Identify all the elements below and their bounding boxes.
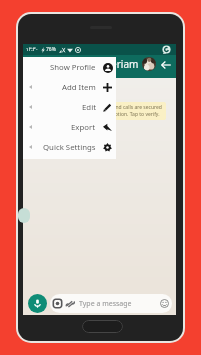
staticText: Add Item	[62, 82, 96, 93]
staticText: Edit	[82, 102, 96, 113]
button[interactable]: Add Item	[23, 77, 116, 97]
button[interactable]: Quick Settings	[23, 137, 116, 157]
staticText: Messages and calls are secured with encr…	[88, 104, 162, 118]
button[interactable]: Messages and calls are secured with encr…	[84, 102, 166, 120]
button[interactable]: Contact photo	[142, 57, 156, 71]
button[interactable]: Record voice message	[28, 294, 47, 313]
staticText: Meriam	[102, 57, 139, 71]
staticText: ١٢:٣٠	[26, 46, 39, 53]
button[interactable]: Edit	[23, 97, 116, 117]
button[interactable]: Back	[159, 58, 172, 71]
staticText: Type a message	[79, 299, 132, 309]
button[interactable]: Export	[23, 117, 116, 137]
staticText: Quick Settings	[43, 142, 96, 153]
staticText: Show Profile	[50, 62, 96, 73]
staticText: 76%	[46, 46, 56, 53]
button[interactable]: Home	[82, 320, 123, 333]
button[interactable]: Show Profile	[23, 57, 116, 77]
staticText: Export	[71, 122, 96, 133]
button[interactable]: Type a message	[50, 294, 172, 313]
